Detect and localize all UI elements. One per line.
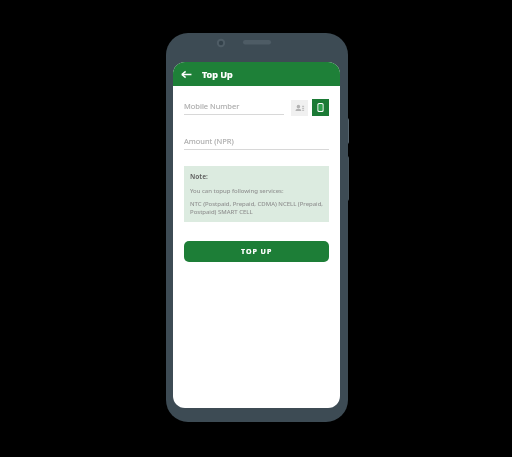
staticText: NTC (Postpaid, Prepaid, CDMA) NCELL (Pre…	[190, 200, 323, 216]
staticText: Note:	[190, 172, 208, 181]
button[interactable]: Back	[178, 66, 194, 82]
button[interactable]: Pick contact	[291, 100, 308, 116]
staticText: You can topup following services:	[190, 187, 284, 195]
staticText: Amount (NPR)	[184, 136, 234, 146]
staticText: Top Up	[202, 68, 233, 80]
button[interactable]: TOP UP	[184, 241, 329, 262]
button[interactable]: Select operator	[312, 99, 329, 116]
staticText: Mobile Number	[184, 101, 240, 111]
staticText: TOP UP	[241, 247, 273, 257]
